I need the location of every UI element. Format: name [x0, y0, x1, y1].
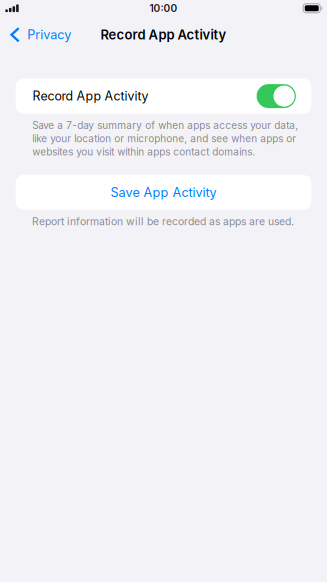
staticText: Save App Activity [110, 185, 216, 200]
staticText: Record App Activity [32, 89, 148, 104]
staticText: Report information will be recorded as a… [32, 215, 294, 228]
staticText: Privacy [27, 27, 71, 42]
staticText: Save a 7-day summary of when apps access… [32, 119, 298, 158]
staticText: Record App Activity [100, 27, 226, 43]
button[interactable]: Privacy [0, 22, 79, 48]
button[interactable]: Record App Activity [0, 78, 327, 114]
staticText: 10:00 [149, 2, 177, 14]
button[interactable]: Save App Activity [0, 175, 327, 210]
